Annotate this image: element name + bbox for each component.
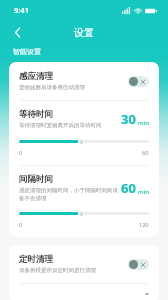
button[interactable]: Toggle [128, 259, 149, 270]
staticText: 30 [121, 110, 136, 128]
staticText: min [138, 119, 149, 127]
button[interactable]: 添加时间 [19, 284, 149, 300]
staticText: 感应清理 [19, 71, 53, 82]
staticText: 0 [19, 221, 23, 228]
staticText: 设置 [74, 26, 94, 39]
staticText: 等待清理时宠物离开后的等待时间 [19, 122, 102, 129]
staticText: 0 [19, 149, 23, 156]
button[interactable]: 定时清理 [19, 254, 149, 274]
staticText: 60 [142, 149, 149, 156]
staticText: 60 [121, 179, 136, 197]
staticText: 9:41 [14, 5, 29, 15]
staticText: 120 [139, 221, 149, 228]
staticText: 宠物如厕后设备将自动清理 [19, 84, 85, 91]
button[interactable] [19, 136, 149, 146]
staticText: 定时清理 [19, 254, 53, 265]
staticText: min [138, 188, 149, 196]
button[interactable]: 感应清理 [19, 71, 149, 91]
staticText: 感应清理的间隔时间，小于间隔时间则设备不会清理 [19, 187, 121, 201]
button[interactable] [19, 208, 149, 218]
button[interactable]: Toggle [128, 76, 149, 87]
staticText: 设备将根据所设定时间进行清理 [19, 267, 96, 274]
staticText: 间隔时间 [19, 174, 53, 185]
staticText: 智能设置 [13, 47, 41, 56]
staticText: 等待时间 [19, 109, 53, 120]
button[interactable]: Back [6, 21, 28, 43]
